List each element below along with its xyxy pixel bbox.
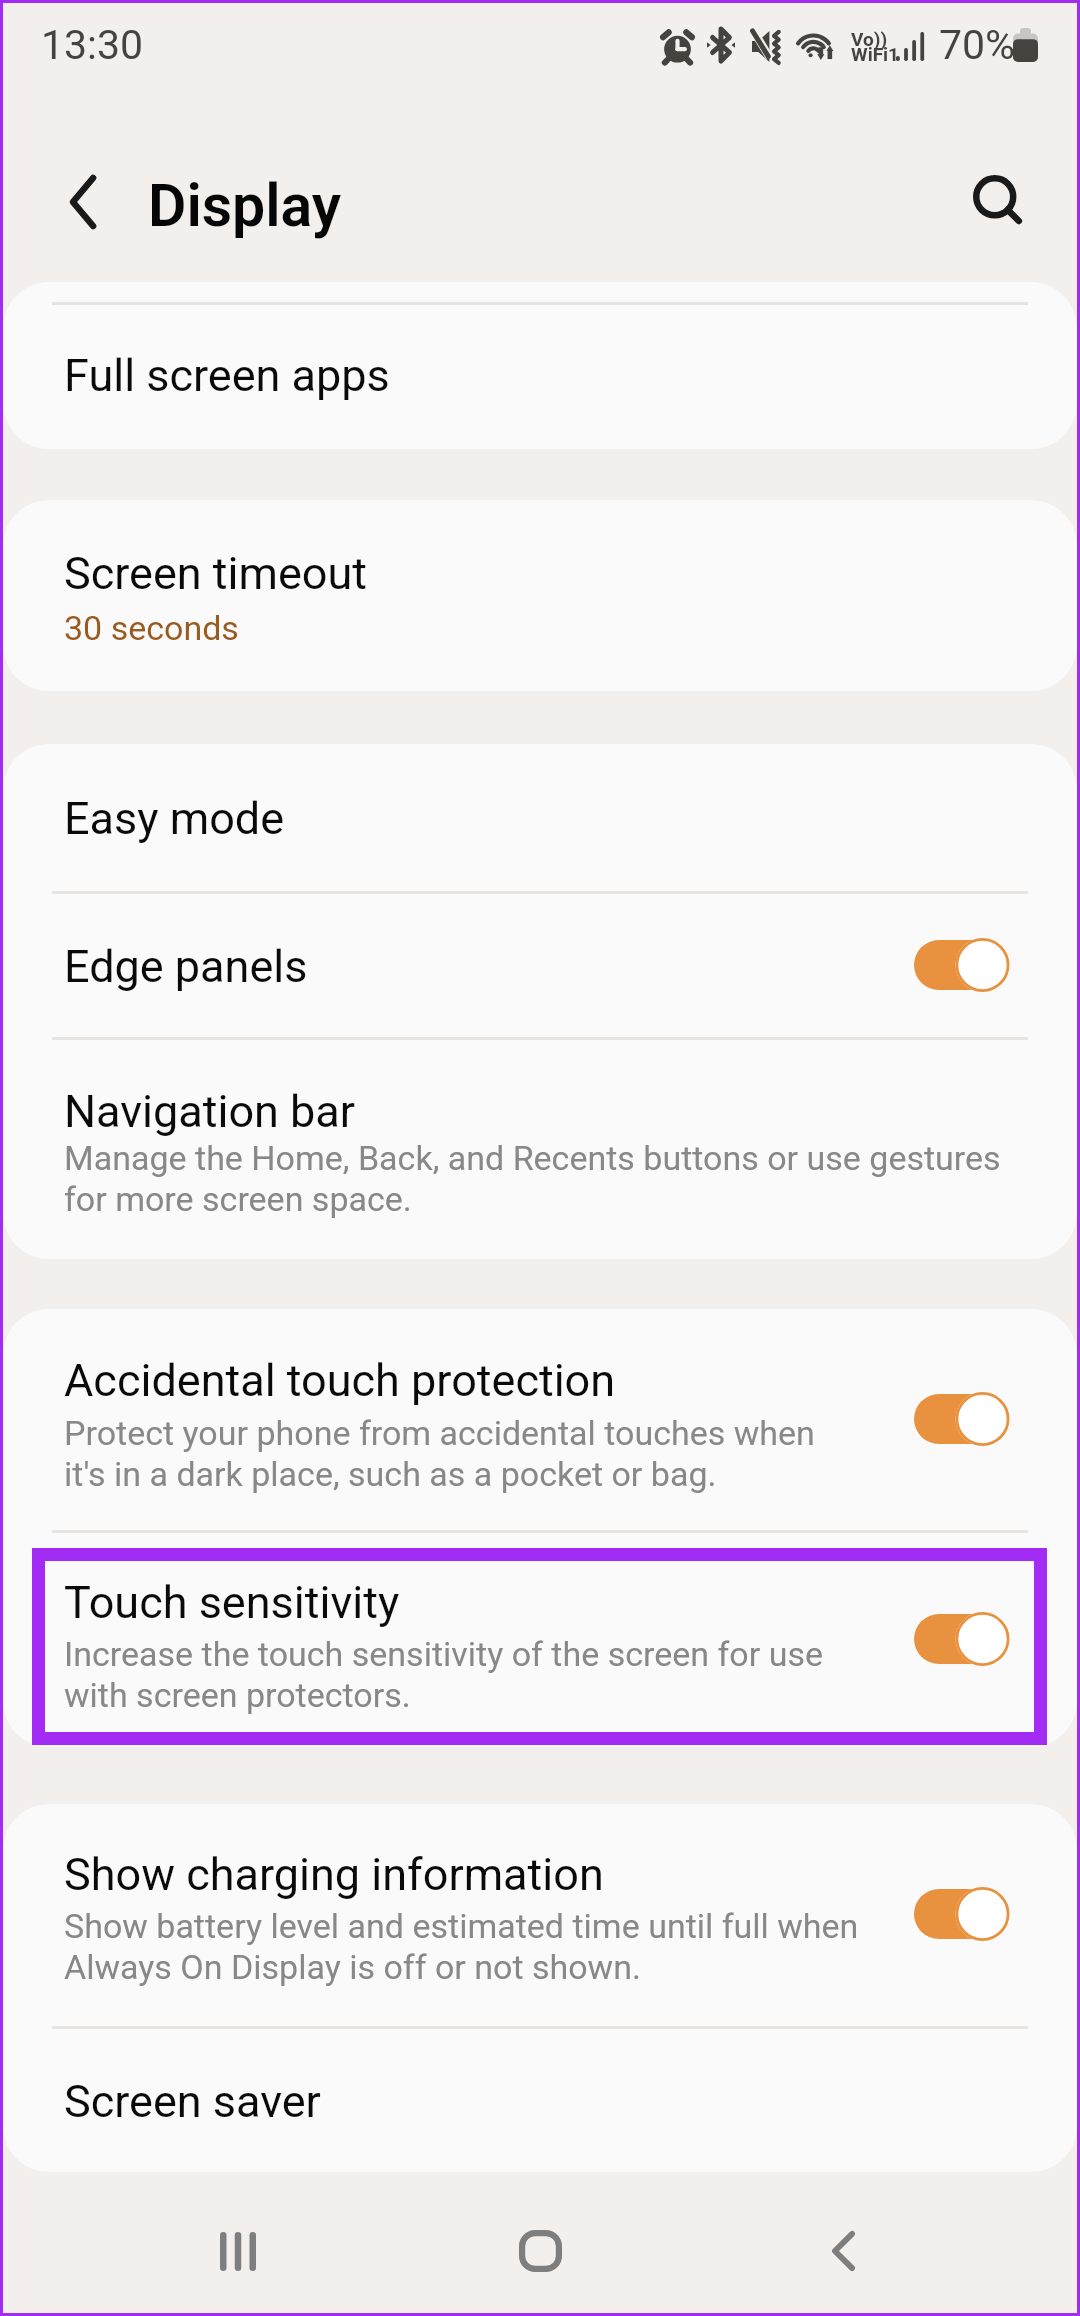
button[interactable]: Navigation bar [3,1039,1077,1259]
button[interactable]: Home [470,2181,610,2316]
staticText: Show battery level and estimated time un… [64,1906,874,1988]
staticText: Display [148,171,342,240]
button[interactable]: Toggle [901,915,1041,1015]
button[interactable]: Show charging information [3,1804,1077,2024]
staticText: 13:30 [41,21,144,69]
button[interactable]: Recents [168,2181,308,2316]
staticText: Vo)) [851,28,888,50]
button[interactable]: Back [773,2181,913,2316]
button[interactable]: Search [947,147,1057,257]
button[interactable]: Accidental touch protection [3,1309,1077,1529]
staticText: Full screen apps [64,349,390,402]
staticText: Edge panels [64,940,308,993]
staticText: Screen saver [64,2075,321,2128]
staticText: Protect your phone from accidental touch… [64,1413,854,1495]
button[interactable]: Toggle [901,1369,1041,1469]
button[interactable]: Full screen apps [3,312,1077,449]
staticText: Increase the touch sensitivity of the sc… [64,1634,854,1716]
staticText: Accidental touch protection [64,1354,616,1407]
staticText: 30 seconds [64,608,239,648]
button[interactable]: Easy mode [3,744,1077,891]
button[interactable]: Touch sensitivity [3,1530,1077,1747]
button[interactable]: Toggle [901,1589,1041,1689]
staticText: WiFi1 [851,43,900,65]
staticText: Manage the Home, Back, and Recents butto… [64,1138,1014,1220]
staticText: Touch sensitivity [64,1576,400,1629]
staticText: Screen timeout [64,547,368,600]
button[interactable]: Screen saver [3,2025,1077,2172]
staticText: Easy mode [64,792,285,845]
button[interactable]: Screen timeout [3,500,1077,691]
button[interactable]: Toggle [901,1864,1041,1964]
staticText: Show charging information [64,1848,604,1901]
button[interactable]: Back [27,146,139,258]
button[interactable]: Edge panels [3,893,1077,1037]
staticText: Navigation bar [64,1085,356,1138]
staticText: 70% [939,21,1016,69]
